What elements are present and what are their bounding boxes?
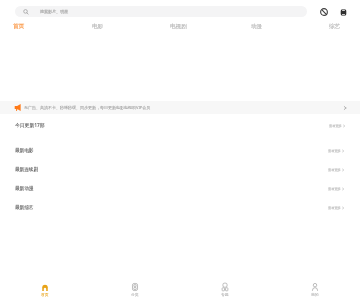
button[interactable]: 查看更多: [328, 149, 345, 153]
button[interactable]: 电影: [85, 20, 111, 33]
staticText: 电影: [92, 23, 104, 30]
staticText: 查看更多: [329, 124, 342, 128]
staticText: 首页: [13, 23, 25, 30]
staticText: 综艺: [329, 23, 341, 30]
button[interactable]: 我的: [270, 283, 360, 299]
staticText: 最新连续剧: [15, 167, 38, 173]
button[interactable]: 查看更多: [329, 124, 346, 128]
staticText: 电视剧: [170, 23, 187, 30]
button[interactable]: 最新电影: [0, 141, 360, 160]
staticText: 今日更新17部: [15, 122, 45, 129]
staticText: 查看更多: [328, 149, 341, 153]
button[interactable]: 动漫: [244, 20, 270, 33]
button[interactable]: 电视剧: [165, 20, 191, 33]
button[interactable]: 免广告: [317, 5, 331, 19]
staticText: 查看更多: [328, 187, 341, 191]
button[interactable]: 最新动漫: [0, 179, 360, 198]
button[interactable]: 专题: [180, 283, 270, 299]
button[interactable]: 查看更多: [328, 187, 345, 191]
button[interactable]: 最新连续剧: [0, 160, 360, 179]
button[interactable]: 搜索影片、明星: [15, 6, 307, 17]
staticText: 搜索影片、明星: [40, 9, 68, 14]
staticText: 我的: [311, 292, 319, 297]
button[interactable]: 无广告、高清不卡、秒播秒缓、同步更新，每日更新电影电视剧VIP会员: [0, 101, 360, 114]
button[interactable]: 查看更多: [328, 168, 345, 172]
staticText: 最新综艺: [15, 205, 34, 211]
staticText: 最新动漫: [15, 186, 34, 192]
staticText: 最新电影: [15, 148, 34, 154]
staticText: 查看更多: [328, 168, 341, 172]
button[interactable]: 综艺: [322, 20, 348, 33]
staticText: 动漫: [251, 23, 263, 30]
button[interactable]: 首页: [6, 20, 32, 33]
button[interactable]: 首页: [0, 283, 90, 299]
staticText: 查看更多: [328, 206, 341, 210]
staticText: 分类: [131, 292, 139, 297]
button[interactable]: 最新综艺: [0, 198, 360, 217]
button[interactable]: 分类: [90, 283, 180, 299]
staticText: 无广告、高清不卡、秒播秒缓、同步更新，每日更新电影电视剧VIP会员: [24, 105, 151, 110]
staticText: 首页: [41, 292, 49, 297]
button[interactable]: 查看更多: [328, 206, 345, 210]
staticText: 专题: [221, 292, 229, 297]
button[interactable]: 下载: [336, 5, 350, 19]
